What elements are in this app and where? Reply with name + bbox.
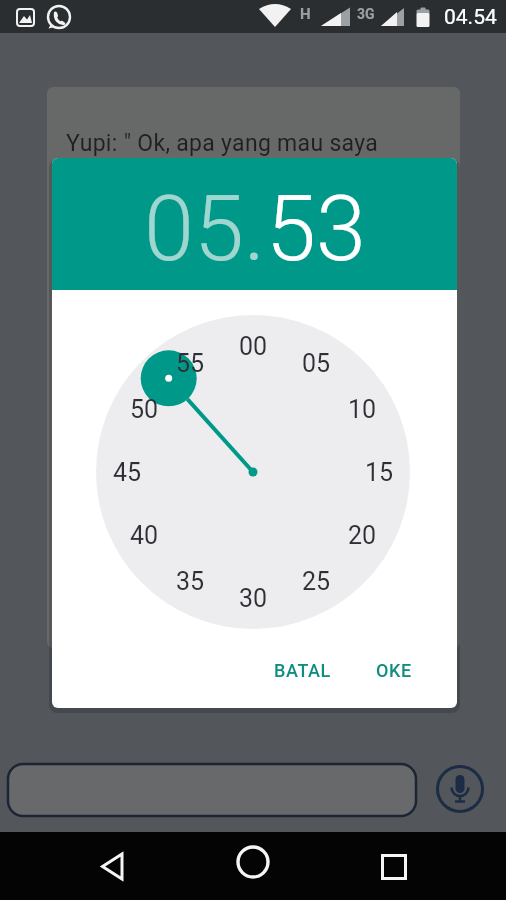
staticText: 53 bbox=[266, 177, 366, 282]
button[interactable]: OKE bbox=[359, 646, 429, 694]
staticText: 25 bbox=[302, 567, 331, 596]
staticText: 35 bbox=[176, 567, 205, 596]
staticText: 3G bbox=[357, 6, 375, 22]
button[interactable] bbox=[370, 843, 418, 891]
staticText: 04.54 bbox=[444, 5, 497, 30]
staticText: 40 bbox=[130, 521, 159, 550]
staticText: Yupi: " Ok, apa yang mau saya bbox=[66, 130, 379, 157]
staticText: 50 bbox=[130, 395, 159, 424]
staticText: 05. bbox=[144, 177, 266, 282]
staticText: 55 bbox=[176, 349, 205, 378]
button[interactable] bbox=[8, 764, 416, 816]
staticText: 45 bbox=[113, 458, 142, 487]
staticText: BATAL bbox=[274, 660, 331, 681]
staticText: 30 bbox=[239, 584, 268, 613]
staticText: 05 bbox=[302, 349, 331, 378]
staticText: 20 bbox=[348, 521, 377, 550]
staticText: OKE bbox=[376, 660, 412, 681]
staticText: 15 bbox=[365, 458, 394, 487]
button[interactable] bbox=[436, 765, 484, 813]
staticText: H bbox=[300, 5, 311, 23]
button[interactable]: BATAL bbox=[257, 646, 347, 694]
staticText: 00 bbox=[239, 332, 268, 361]
button[interactable] bbox=[88, 842, 136, 890]
button[interactable] bbox=[229, 838, 277, 886]
staticText: 10 bbox=[348, 395, 377, 424]
